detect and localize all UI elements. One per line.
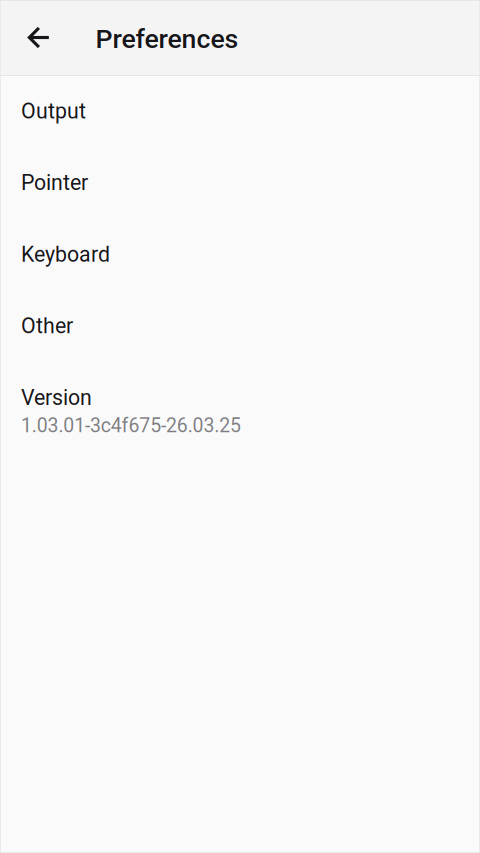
staticText: Keyboard [21, 242, 110, 267]
button[interactable]: Pointer [0, 148, 480, 219]
button[interactable]: Back [14, 0, 62, 75]
staticText: Output [21, 99, 86, 124]
button[interactable]: Version [0, 362, 480, 464]
staticText: Pointer [21, 170, 88, 195]
button[interactable]: Keyboard [0, 219, 480, 291]
button[interactable]: Output [0, 76, 480, 148]
staticText: Version [21, 385, 92, 410]
button[interactable]: Other [0, 291, 480, 362]
staticText: 1.03.01-3c4f675-26.03.25 [21, 414, 241, 437]
staticText: Other [21, 313, 73, 338]
staticText: Preferences [95, 23, 238, 54]
